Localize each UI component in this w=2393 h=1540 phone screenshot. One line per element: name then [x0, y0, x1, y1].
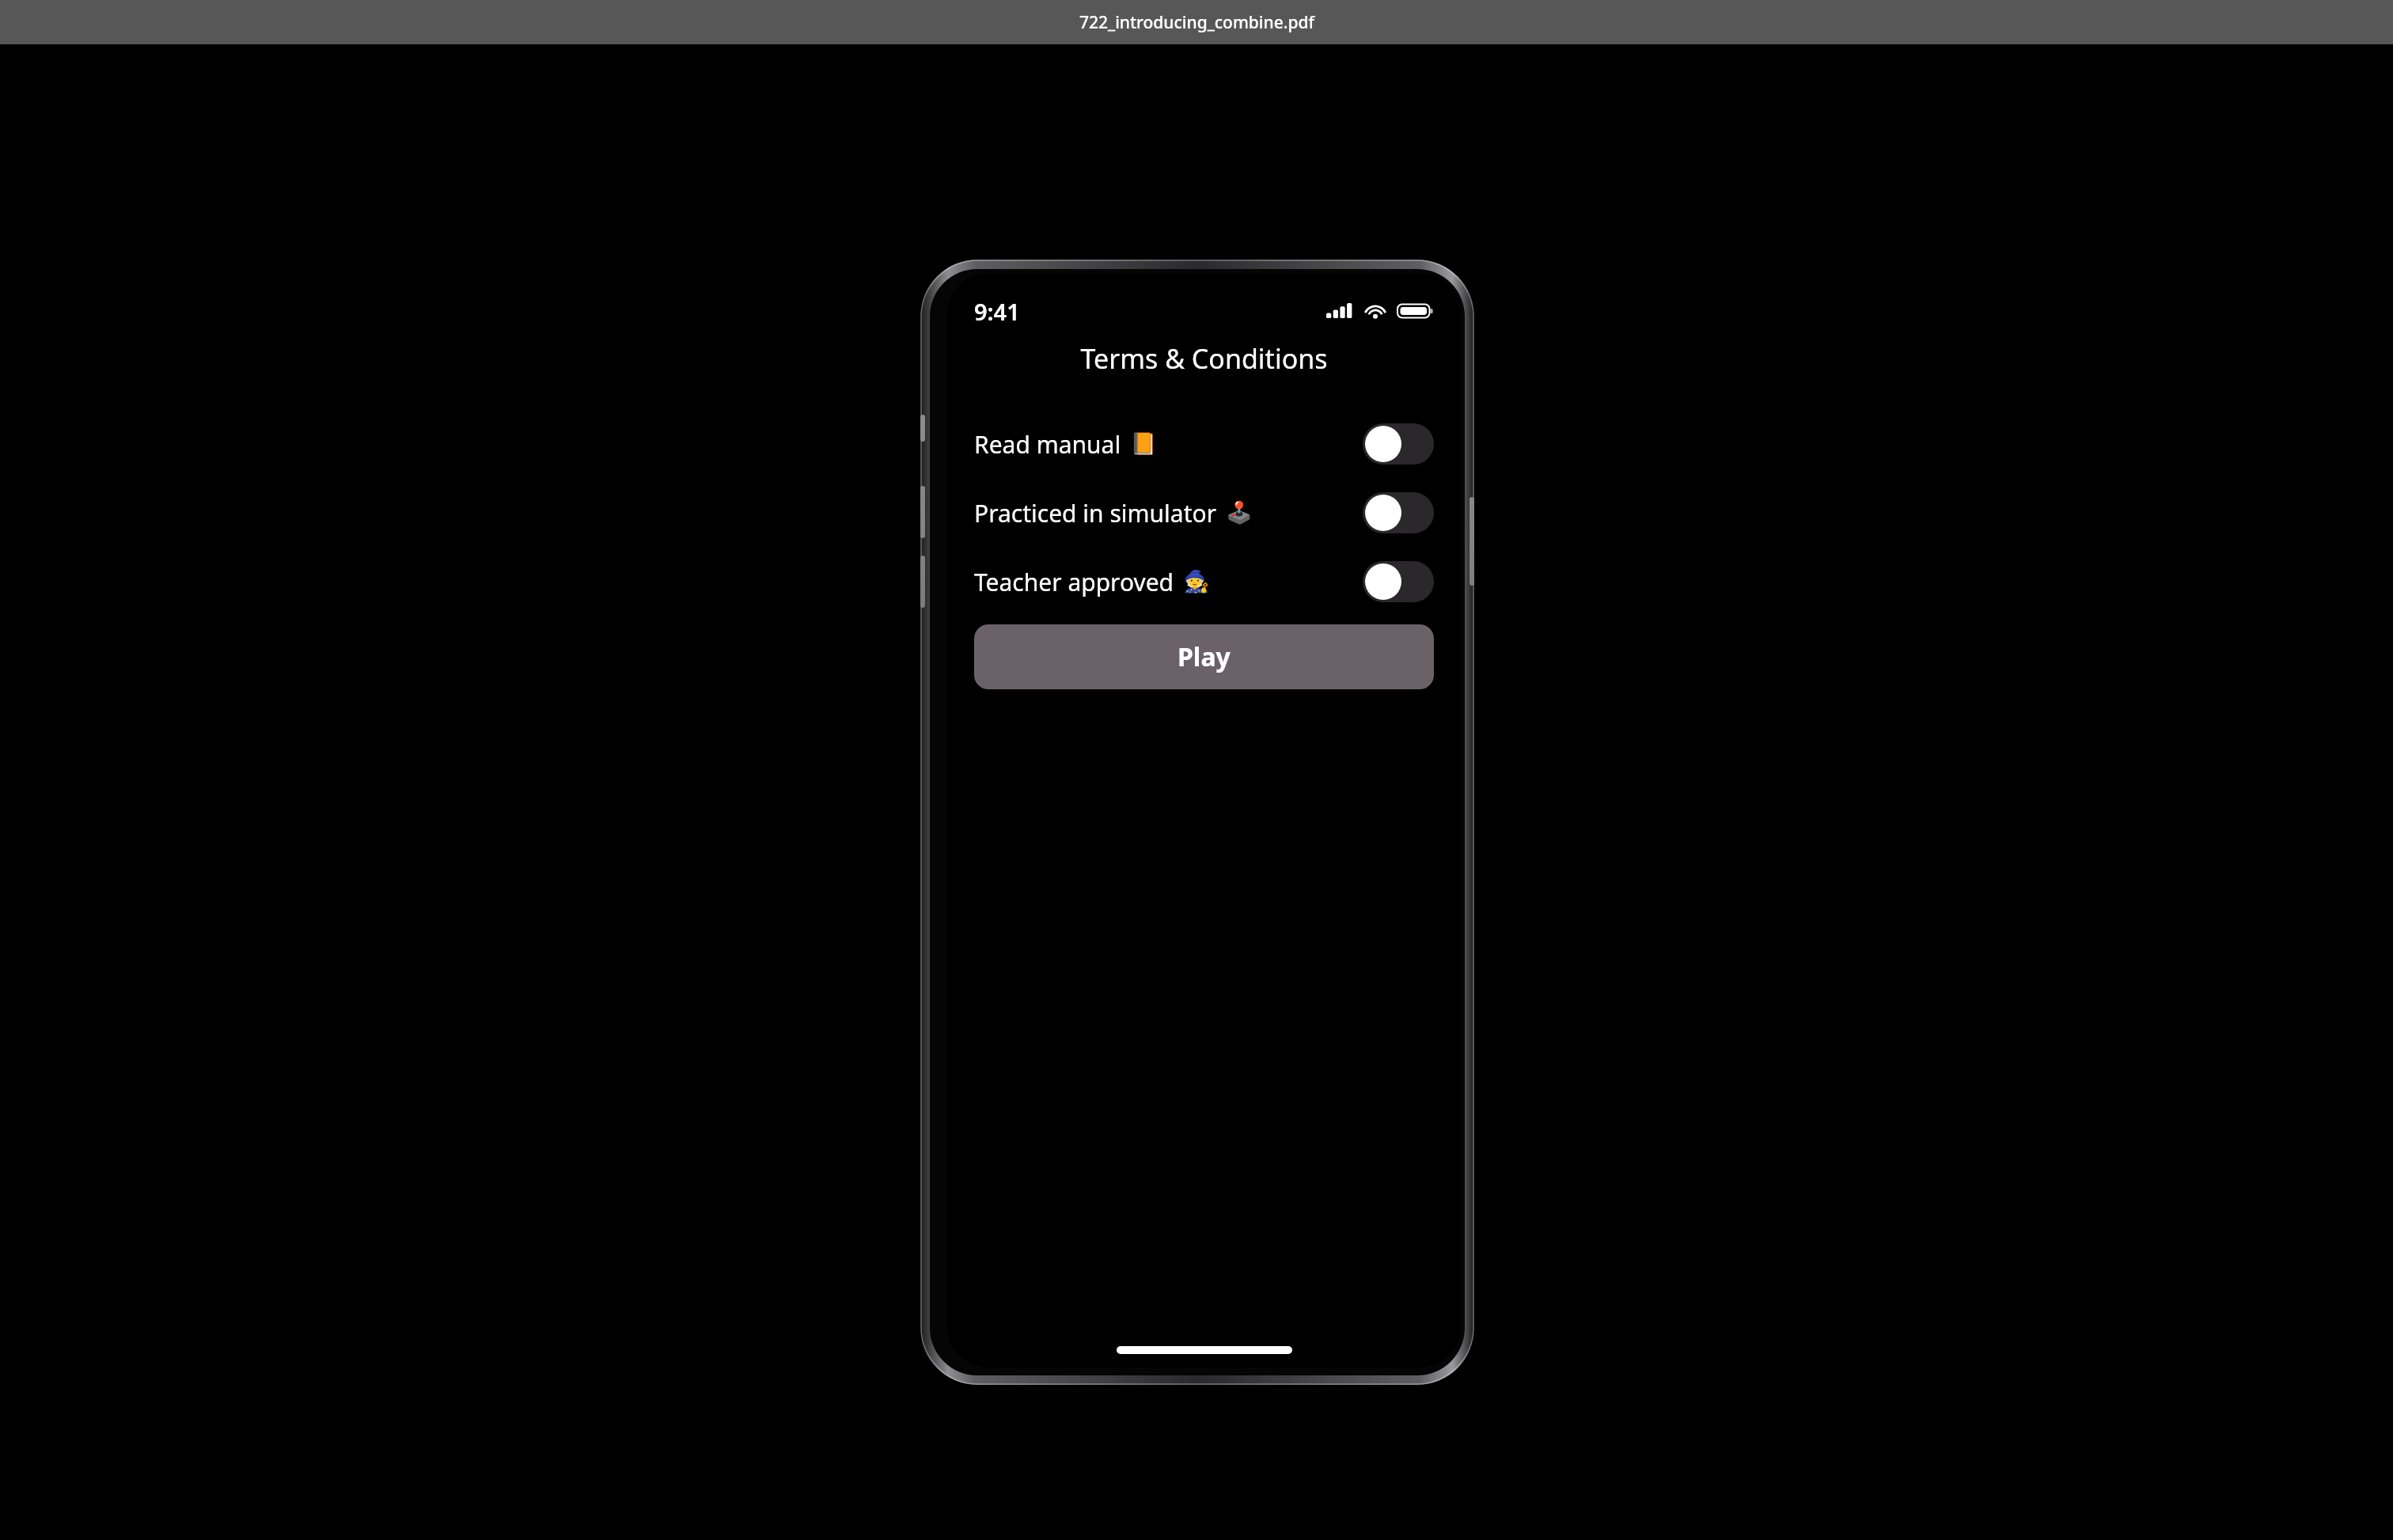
staticText: Teacher approved — [974, 566, 1174, 598]
button[interactable]: Toggle — [1363, 561, 1434, 602]
staticText: Terms & Conditions — [1080, 340, 1328, 377]
button[interactable]: Toggle — [1363, 423, 1434, 465]
staticText: 📙 — [1130, 431, 1157, 457]
staticText: Play — [1178, 639, 1231, 674]
button[interactable]: Play — [974, 624, 1434, 689]
staticText: 722_introducing_combine.pdf — [1079, 11, 1314, 34]
staticText: 🕹️ — [1226, 500, 1253, 525]
button[interactable]: Practiced in simulator — [974, 491, 1434, 535]
button[interactable]: Read manual — [974, 422, 1434, 466]
button[interactable]: Teacher approved — [974, 559, 1434, 604]
staticText: 9:41 — [974, 296, 1020, 327]
staticText: Read manual — [974, 428, 1121, 461]
button[interactable]: Toggle — [1363, 492, 1434, 533]
staticText: Practiced in simulator — [974, 497, 1217, 529]
staticText: 🧙 — [1183, 569, 1210, 594]
